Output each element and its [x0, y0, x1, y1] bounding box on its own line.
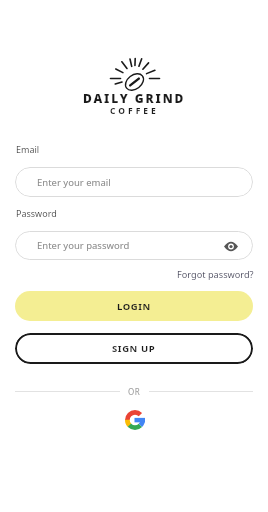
button[interactable] [209, 232, 253, 260]
staticText: LOGIN [117, 300, 151, 313]
staticText: Password [16, 207, 57, 219]
button[interactable] [115, 400, 155, 440]
button[interactable]: Enter your email [15, 167, 253, 197]
staticText: SIGN UP [112, 342, 156, 355]
button[interactable]: SIGN UP [15, 333, 253, 364]
button[interactable]: Enter your password [15, 231, 253, 260]
button[interactable]: LOGIN [15, 291, 253, 321]
staticText: Enter your email [37, 176, 111, 189]
staticText: Email [16, 143, 40, 155]
staticText: Enter your password [37, 239, 130, 252]
staticText: COFFEE [110, 105, 159, 117]
button[interactable]: Forgot password? [0, 268, 268, 281]
staticText: Forgot password? [177, 268, 254, 281]
staticText: OR [128, 386, 141, 397]
staticText: DAILY GRIND [83, 90, 186, 106]
